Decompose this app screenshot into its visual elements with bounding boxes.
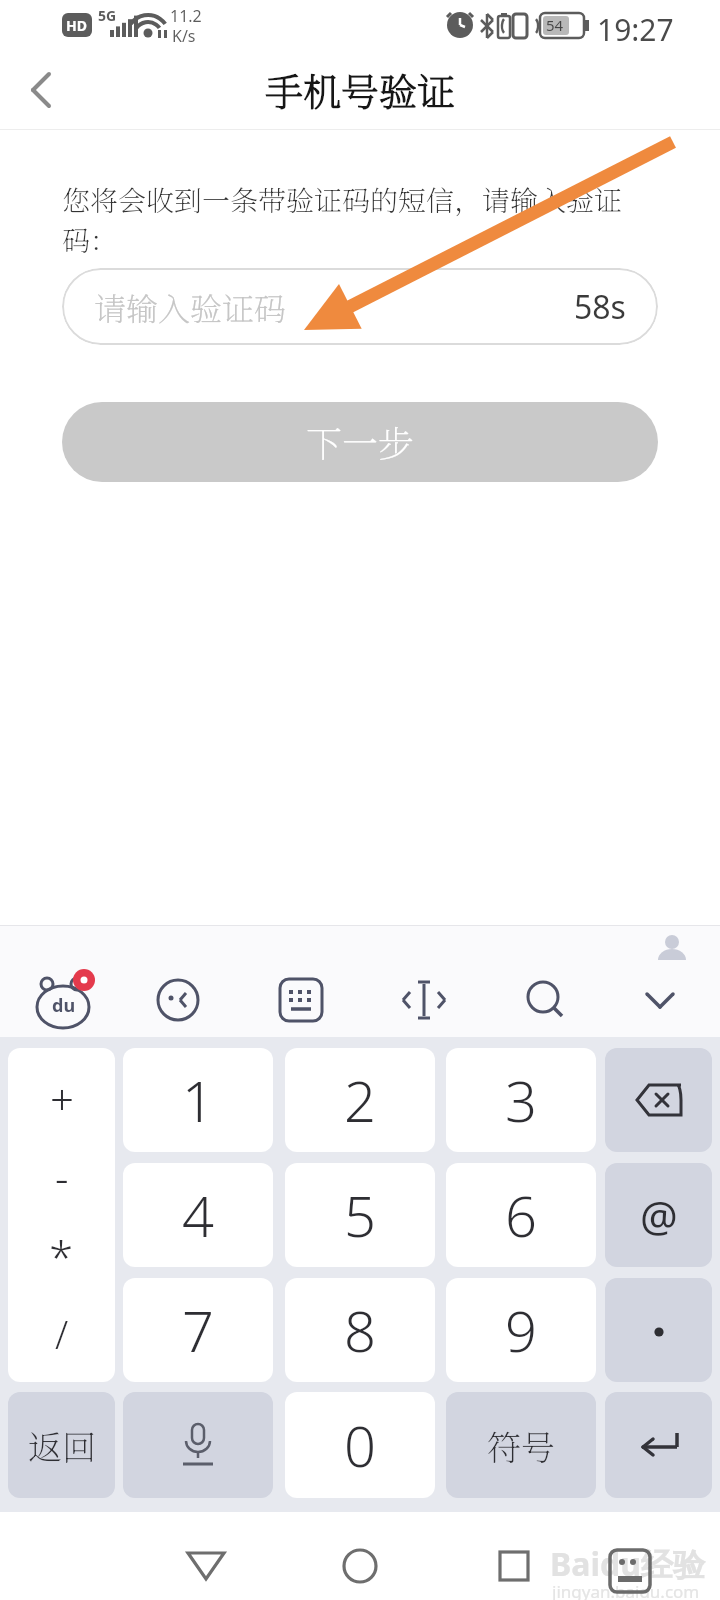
button[interactable]	[230, 975, 372, 1025]
staticText: 1	[182, 1062, 214, 1138]
staticText: 58s	[574, 285, 626, 329]
staticText: 11.2	[170, 5, 202, 27]
button[interactable]	[616, 975, 704, 1025]
button[interactable]	[476, 975, 616, 1025]
button[interactable]: 8	[285, 1278, 435, 1382]
button[interactable]	[605, 1048, 712, 1152]
button[interactable]	[176, 1546, 236, 1586]
staticText: 返回	[28, 1421, 96, 1470]
button[interactable]: 2	[285, 1048, 435, 1152]
staticText: K/s	[172, 25, 196, 47]
staticText: du	[52, 993, 76, 1018]
staticText: 5	[344, 1177, 376, 1253]
button[interactable]	[0, 50, 78, 128]
staticText: 您将会收到一条带验证码的短信，请输入验证 码：	[62, 179, 623, 259]
staticText: 符号	[487, 1421, 555, 1470]
staticText: /	[55, 1308, 69, 1360]
button[interactable]	[372, 975, 476, 1025]
staticText: 下一步	[306, 416, 415, 468]
staticText: 4	[182, 1177, 214, 1253]
staticText: 19:27	[597, 9, 674, 50]
staticText: 2	[344, 1062, 376, 1138]
button[interactable]: 6	[446, 1163, 596, 1267]
staticText: *	[49, 1227, 74, 1287]
staticText: 6	[505, 1177, 537, 1253]
button[interactable]	[126, 975, 230, 1025]
button[interactable]: 7	[123, 1278, 273, 1382]
button[interactable]: 下一步	[62, 402, 658, 482]
button[interactable]	[123, 1392, 273, 1498]
staticText: jingyan.baidu.com	[552, 1580, 700, 1600]
button[interactable]: @	[605, 1163, 712, 1267]
staticText: -	[55, 1148, 69, 1205]
staticText: 5G	[98, 6, 117, 25]
button[interactable]: 请输入验证码	[62, 268, 658, 345]
staticText: +	[50, 1070, 74, 1127]
staticText: 0	[344, 1407, 376, 1483]
button[interactable]	[0, 975, 126, 1025]
button[interactable]	[330, 1546, 390, 1586]
staticText: 54	[546, 15, 564, 35]
button[interactable]: 4	[123, 1163, 273, 1267]
staticText: 手机号验证	[265, 62, 456, 117]
staticText: 请输入验证码	[94, 284, 287, 330]
staticText: 9	[505, 1292, 537, 1368]
button[interactable]: +	[8, 1048, 115, 1382]
staticText: 7	[182, 1292, 214, 1368]
staticText: Baidu经验	[550, 1542, 706, 1586]
staticText: 8	[344, 1292, 376, 1368]
button[interactable]	[484, 1546, 544, 1586]
button[interactable]: 3	[446, 1048, 596, 1152]
button[interactable]: 返回	[8, 1392, 115, 1498]
button[interactable]: 5	[285, 1163, 435, 1267]
button[interactable]	[605, 1278, 712, 1382]
button[interactable]	[605, 1392, 712, 1498]
button[interactable]: 符号	[446, 1392, 596, 1498]
button[interactable]: 0	[285, 1392, 435, 1498]
staticText: 3	[505, 1062, 537, 1138]
button[interactable]: 9	[446, 1278, 596, 1382]
staticText: @	[640, 1187, 678, 1244]
button[interactable]: 1	[123, 1048, 273, 1152]
staticText: HD	[66, 16, 87, 35]
